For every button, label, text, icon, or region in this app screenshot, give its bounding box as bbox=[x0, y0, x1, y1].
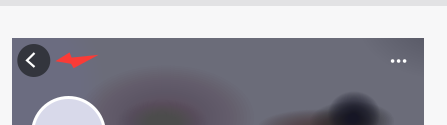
button[interactable]: More options bbox=[377, 41, 421, 81]
button[interactable]: Back bbox=[17, 44, 50, 77]
